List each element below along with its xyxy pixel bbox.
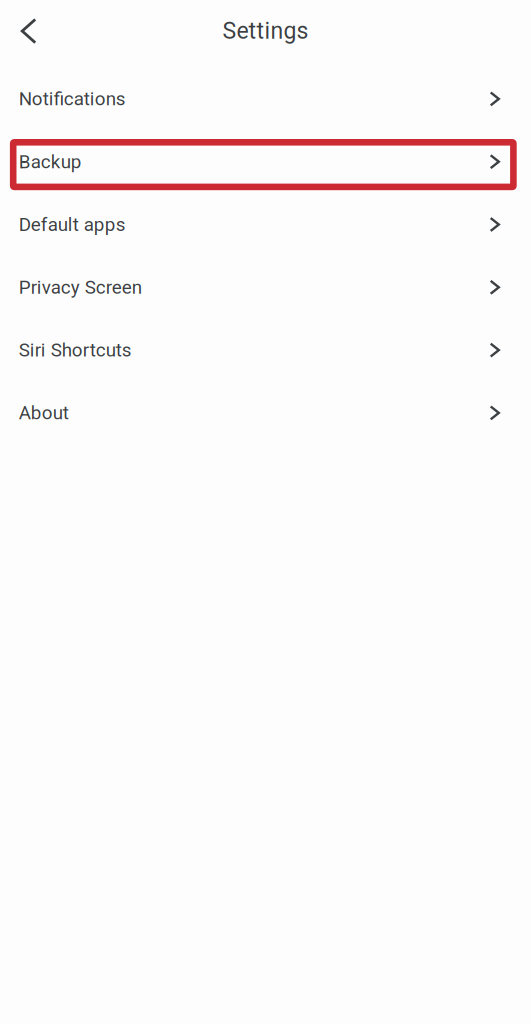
button[interactable]: Notifications: [0, 67, 531, 130]
button[interactable]: Back: [7, 9, 51, 53]
staticText: Siri Shortcuts: [19, 339, 132, 361]
button[interactable]: Backup: [0, 130, 531, 193]
staticText: Privacy Screen: [19, 276, 142, 298]
staticText: About: [19, 402, 69, 424]
staticText: Settings: [222, 17, 308, 44]
button[interactable]: Privacy Screen: [0, 256, 531, 319]
button[interactable]: About: [0, 381, 531, 444]
button[interactable]: Default apps: [0, 193, 531, 256]
staticText: Backup: [19, 151, 82, 173]
button[interactable]: Siri Shortcuts: [0, 319, 531, 381]
staticText: Notifications: [19, 88, 126, 110]
staticText: Default apps: [19, 213, 126, 235]
